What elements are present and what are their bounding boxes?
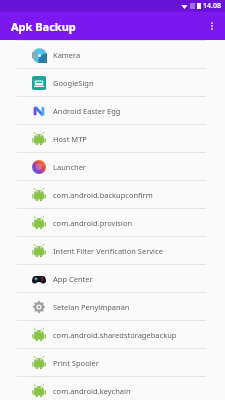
button[interactable]: com.android.keychain	[0, 377, 225, 400]
staticText: com.android.provision	[53, 218, 133, 228]
button[interactable]: com.android.backupconfirm	[0, 181, 225, 208]
staticText: Android Easter Egg	[53, 106, 121, 116]
staticText: 14.08	[203, 1, 221, 11]
button[interactable]: Intent Filter Verification Service	[0, 237, 225, 264]
button[interactable]: App Center	[0, 265, 225, 292]
button[interactable]: Setelan Penyimpanan	[0, 293, 225, 320]
staticText: Intent Filter Verification Service	[53, 246, 163, 256]
staticText: Host MTP	[53, 134, 87, 144]
button[interactable]: Kamera	[0, 41, 225, 68]
staticText: Launcher	[53, 162, 86, 172]
staticText: com.android.backupconfirm	[53, 190, 153, 200]
staticText: com.android.keychain	[53, 386, 131, 396]
staticText: Apk Backup	[11, 19, 76, 34]
button[interactable]: Android Easter Egg	[0, 97, 225, 124]
button[interactable]: com.android.sharedstoragebackup	[0, 321, 225, 348]
staticText: App Center	[53, 274, 93, 284]
staticText: com.android.sharedstoragebackup	[53, 330, 177, 340]
button[interactable]: GoogleSign	[0, 69, 225, 96]
button[interactable]: Host MTP	[0, 125, 225, 152]
button[interactable]: com.android.provision	[0, 209, 225, 236]
button[interactable]: Launcher	[0, 153, 225, 180]
staticText: GoogleSign	[53, 78, 94, 88]
button[interactable]: More options	[199, 13, 225, 39]
staticText: Setelan Penyimpanan	[53, 302, 130, 312]
staticText: Kamera	[53, 50, 81, 60]
staticText: Print Spooler	[53, 358, 99, 368]
button[interactable]: Print Spooler	[0, 349, 225, 376]
